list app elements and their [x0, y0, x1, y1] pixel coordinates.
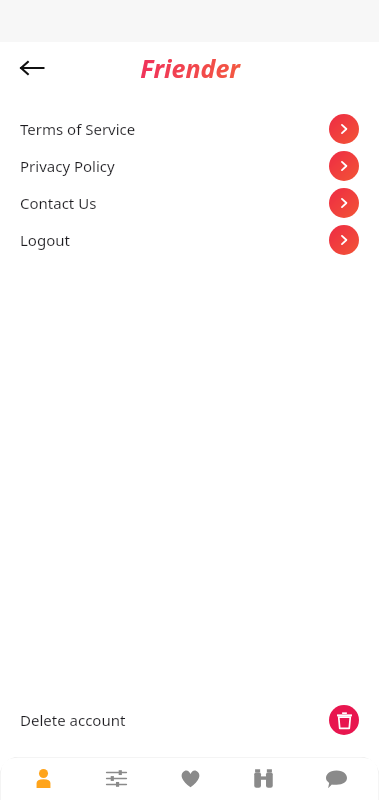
- button[interactable]: Likes: [160, 757, 220, 800]
- button[interactable]: Discover: [233, 757, 293, 800]
- staticText: Friender: [140, 51, 240, 85]
- button[interactable]: Logout: [0, 221, 379, 258]
- button[interactable]: Back: [10, 46, 54, 90]
- button[interactable]: Privacy Policy: [0, 147, 379, 184]
- button[interactable]: Chats: [306, 757, 366, 800]
- staticText: Privacy Policy: [20, 156, 115, 176]
- staticText: Delete account: [20, 710, 126, 730]
- button[interactable]: Terms of Service: [0, 110, 379, 147]
- button[interactable]: Filters: [86, 757, 146, 800]
- staticText: Contact Us: [20, 193, 97, 213]
- button[interactable]: Delete account: [0, 700, 379, 740]
- staticText: Logout: [20, 230, 70, 250]
- button[interactable]: Profile: [13, 757, 73, 800]
- staticText: Terms of Service: [20, 119, 136, 139]
- button[interactable]: Contact Us: [0, 184, 379, 221]
